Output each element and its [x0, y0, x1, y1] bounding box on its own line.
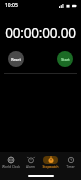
button[interactable]: Reset — [8, 51, 24, 67]
staticText: World Clock — [2, 165, 20, 169]
staticText: Timer — [66, 165, 75, 169]
button[interactable]: Alarm — [21, 156, 40, 169]
button[interactable]: World Clock — [1, 156, 20, 169]
button[interactable]: Timer — [61, 156, 80, 169]
button[interactable]: Start — [57, 51, 73, 67]
staticText: Stopwatch — [42, 165, 59, 169]
button[interactable]: Stopwatch — [41, 156, 60, 169]
staticText: Alarm — [26, 165, 35, 169]
staticText: 00:00:00,00 — [5, 24, 76, 38]
staticText: Reset — [11, 57, 21, 62]
staticText: Start — [61, 57, 70, 62]
staticText: 10:05 — [5, 2, 18, 9]
